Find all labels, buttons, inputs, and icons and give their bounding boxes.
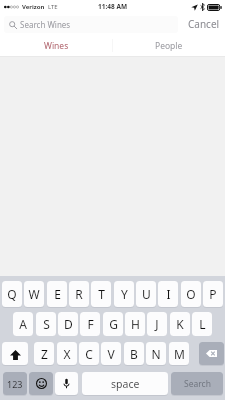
button[interactable]: D — [58, 312, 78, 336]
button[interactable]: O — [181, 281, 201, 307]
staticText: Search Wines — [20, 19, 71, 30]
staticText: K — [176, 316, 184, 332]
button[interactable]: Emoji — [29, 372, 53, 395]
button[interactable]: M — [169, 342, 189, 365]
button[interactable]: Wines — [0, 35, 112, 56]
staticText: A — [19, 316, 27, 332]
staticText: M — [174, 346, 185, 362]
staticText: H — [131, 316, 140, 332]
button[interactable]: E — [47, 281, 67, 307]
button[interactable]: Backspace — [199, 342, 224, 365]
staticText: D — [64, 316, 73, 332]
button[interactable]: W — [24, 281, 44, 307]
staticText: LTE — [48, 3, 58, 11]
button[interactable]: Cancel — [182, 13, 225, 35]
staticText: 123 — [7, 378, 23, 390]
button[interactable]: Dictate — [55, 372, 78, 395]
staticText: W — [28, 286, 40, 302]
button[interactable]: F — [80, 312, 100, 336]
button[interactable]: N — [146, 342, 166, 365]
staticText: 11:48 AM — [98, 2, 128, 11]
button[interactable]: I — [158, 281, 178, 307]
staticText: J — [155, 316, 159, 332]
button[interactable]: Search Wines — [4, 16, 178, 33]
staticText: P — [209, 286, 217, 302]
button[interactable]: T — [91, 281, 111, 307]
button[interactable]: K — [170, 312, 190, 336]
button[interactable]: R — [69, 281, 89, 307]
button[interactable]: Q — [2, 281, 22, 307]
staticText: Wines — [44, 40, 69, 52]
staticText: Verizon — [22, 3, 45, 11]
button[interactable]: Y — [114, 281, 134, 307]
button[interactable]: H — [125, 312, 145, 336]
staticText: People — [155, 40, 183, 52]
button[interactable]: V — [101, 342, 121, 365]
staticText: Z — [41, 346, 48, 362]
button[interactable]: Search — [171, 372, 223, 395]
staticText: U — [142, 286, 151, 302]
staticText: L — [199, 316, 206, 332]
staticText: G — [109, 316, 118, 332]
staticText: R — [75, 286, 83, 302]
staticText: Q — [7, 286, 17, 302]
button[interactable]: Z — [34, 342, 54, 365]
button[interactable]: L — [192, 312, 212, 336]
staticText: N — [151, 346, 161, 362]
button[interactable]: G — [103, 312, 123, 336]
staticText: F — [87, 316, 94, 332]
staticText: S — [43, 316, 50, 332]
staticText: E — [54, 286, 61, 302]
staticText: I — [166, 286, 171, 302]
staticText: T — [98, 286, 105, 302]
button[interactable]: C — [79, 342, 99, 365]
button[interactable]: space — [82, 372, 168, 395]
button[interactable]: 123 — [3, 372, 27, 395]
button[interactable]: U — [136, 281, 156, 307]
staticText: C — [85, 346, 93, 362]
button[interactable]: Shift — [2, 342, 28, 365]
button[interactable]: P — [203, 281, 223, 307]
staticText: Search — [184, 378, 211, 390]
staticText: Y — [121, 286, 128, 302]
staticText: space — [111, 377, 140, 391]
staticText: O — [186, 286, 196, 302]
button[interactable]: S — [36, 312, 56, 336]
button[interactable]: B — [124, 342, 144, 365]
staticText: V — [107, 346, 115, 362]
staticText: Cancel — [188, 17, 220, 31]
button[interactable]: A — [13, 312, 33, 336]
button[interactable]: X — [57, 342, 77, 365]
button[interactable]: People — [113, 35, 225, 56]
button[interactable]: J — [147, 312, 167, 336]
staticText: X — [63, 346, 71, 362]
staticText: B — [130, 346, 138, 362]
